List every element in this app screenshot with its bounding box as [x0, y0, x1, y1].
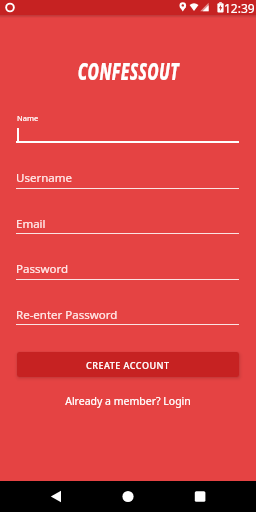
button[interactable]: Already a member? Login [65, 394, 191, 408]
staticText: Re-enter Password [16, 307, 118, 323]
staticText: CONFESSOUT [78, 55, 179, 86]
staticText: CREATE ACCOUNT [86, 359, 170, 371]
button[interactable] [40, 481, 88, 512]
staticText: Email [16, 216, 46, 232]
staticText: 12:39 [224, 0, 255, 15]
staticText: Password [16, 261, 69, 277]
button[interactable] [104, 481, 152, 512]
button[interactable]: CREATE ACCOUNT [17, 352, 239, 377]
staticText: Username [16, 170, 72, 186]
button[interactable] [176, 481, 224, 512]
staticText: Name [17, 113, 39, 123]
